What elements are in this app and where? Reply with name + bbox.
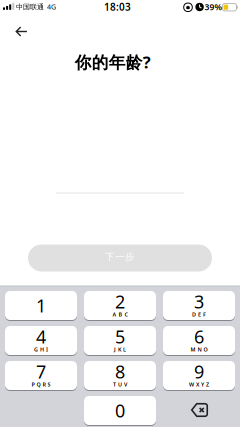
button[interactable]: 5 bbox=[84, 326, 156, 356]
staticText: 39% bbox=[204, 1, 222, 13]
staticText: 0 bbox=[115, 398, 125, 423]
staticText: P Q R S bbox=[31, 381, 50, 388]
staticText: 18:03 bbox=[104, 0, 131, 14]
staticText: 2 bbox=[115, 289, 125, 314]
button[interactable]: 4 bbox=[5, 326, 77, 356]
staticText: 4G bbox=[47, 2, 56, 11]
staticText: D E F bbox=[192, 311, 206, 318]
staticText: 下一步 bbox=[105, 251, 135, 263]
staticText: W X Y Z bbox=[189, 381, 209, 388]
staticText: 4 bbox=[36, 324, 46, 349]
button[interactable]: Back bbox=[10, 21, 33, 42]
staticText: 6 bbox=[194, 324, 204, 349]
staticText: 5 bbox=[115, 324, 125, 349]
button[interactable]: 3 bbox=[163, 291, 235, 321]
staticText: 7 bbox=[36, 359, 46, 384]
button[interactable]: 6 bbox=[163, 326, 235, 356]
button[interactable]: 1 bbox=[5, 291, 77, 321]
staticText: T U V bbox=[113, 381, 127, 388]
staticText: M N O bbox=[190, 346, 207, 353]
staticText: G H I bbox=[34, 346, 48, 353]
button[interactable]: 9 bbox=[163, 361, 235, 391]
button[interactable]: 7 bbox=[5, 361, 77, 391]
button[interactable]: 下一步 bbox=[28, 244, 212, 271]
staticText: 你的年龄? bbox=[75, 51, 151, 73]
button[interactable]: 0 bbox=[84, 396, 156, 426]
button[interactable]: 8 bbox=[84, 361, 156, 391]
staticText: 9 bbox=[194, 359, 204, 384]
staticText: J K L bbox=[114, 346, 126, 353]
staticText: 中国联通 bbox=[16, 2, 44, 11]
staticText: 1 bbox=[36, 293, 46, 318]
button[interactable]: 2 bbox=[84, 291, 156, 321]
staticText: A B C bbox=[112, 311, 127, 318]
button[interactable]: Delete bbox=[184, 396, 215, 424]
staticText: 3 bbox=[194, 289, 204, 314]
staticText: 8 bbox=[115, 359, 125, 384]
